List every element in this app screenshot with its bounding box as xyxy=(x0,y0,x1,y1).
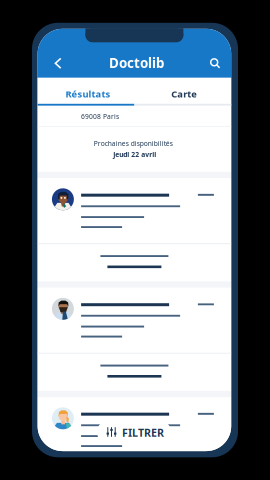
staticText: FILTRER xyxy=(122,425,164,440)
button[interactable]: Carte xyxy=(136,81,233,107)
button[interactable]: Résultats xyxy=(40,81,136,107)
staticText: Carte xyxy=(171,88,197,100)
button[interactable]: Back xyxy=(45,50,71,76)
button[interactable]: 69008 Paris xyxy=(57,108,143,124)
staticText: 69008 Paris xyxy=(81,112,119,121)
staticText: Doctolib xyxy=(109,54,164,72)
button[interactable]: Search xyxy=(203,51,227,75)
button[interactable]: FILTRER xyxy=(97,420,171,444)
staticText: Résultats xyxy=(65,88,110,100)
staticText: Jeudi 22 avril xyxy=(113,150,156,159)
staticText: Prochaines disponibilités xyxy=(94,139,173,148)
